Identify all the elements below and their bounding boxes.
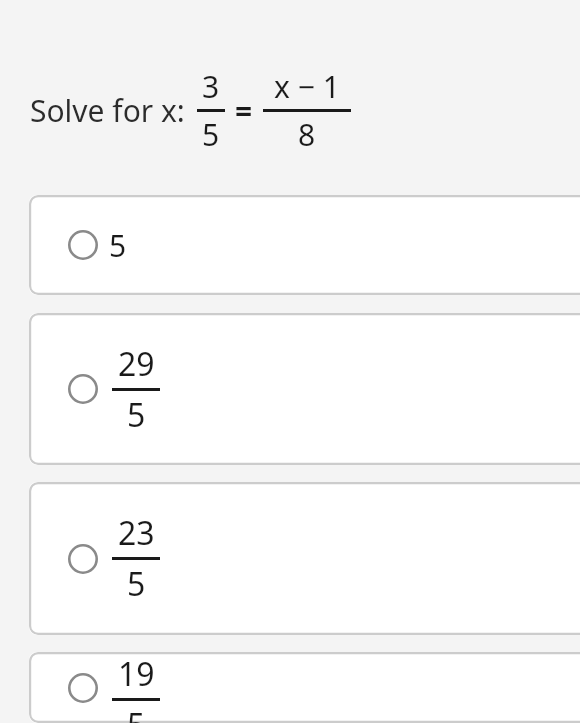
staticText: 19 — [118, 652, 155, 696]
staticText: 5 — [202, 114, 220, 155]
other: Select answer — [68, 230, 98, 260]
button[interactable]: Select answer — [29, 195, 580, 295]
staticText: x − 1 — [274, 66, 340, 107]
other: Select answer — [68, 673, 98, 703]
button[interactable]: Select answer — [29, 652, 580, 723]
staticText: 29 — [118, 342, 155, 386]
staticText: Solve for x: — [30, 90, 185, 131]
staticText: 5 — [127, 562, 146, 606]
staticText: 8 — [298, 114, 316, 155]
staticText: 5 — [127, 703, 146, 723]
other: Select answer — [68, 544, 98, 574]
staticText: 5 — [127, 393, 146, 437]
staticText: 23 — [118, 511, 155, 555]
staticText: 3 — [202, 66, 220, 107]
other: Select answer — [68, 374, 98, 404]
button[interactable]: Select answer — [29, 313, 580, 465]
staticText: = — [235, 90, 253, 131]
button[interactable]: Select answer — [29, 482, 580, 635]
staticText: 5 — [109, 225, 127, 266]
